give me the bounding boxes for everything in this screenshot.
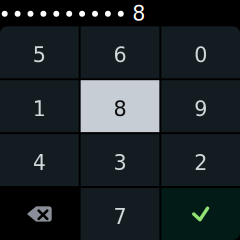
button[interactable]: 7 <box>81 188 159 240</box>
button[interactable]: 2 <box>161 134 240 186</box>
staticText: 3 <box>113 151 126 175</box>
staticText: 8 <box>132 1 145 25</box>
staticText: 0 <box>194 43 207 67</box>
button[interactable]: 0 <box>161 26 240 78</box>
button[interactable]: 5 <box>0 26 79 78</box>
staticText: 4 <box>33 151 46 175</box>
button[interactable]: Delete <box>0 188 79 240</box>
staticText: 2 <box>194 151 207 175</box>
button[interactable]: 3 <box>81 134 159 186</box>
staticText: 7 <box>113 205 126 229</box>
staticText: 5 <box>33 43 46 67</box>
staticText: 1 <box>33 97 46 121</box>
staticText: 9 <box>194 97 207 121</box>
button[interactable]: 8 <box>81 80 159 132</box>
button[interactable]: Confirm <box>161 188 240 240</box>
button[interactable]: 9 <box>161 80 240 132</box>
staticText: 6 <box>113 43 126 67</box>
button[interactable]: 1 <box>0 80 79 132</box>
button[interactable]: 4 <box>0 134 79 186</box>
button[interactable]: 6 <box>81 26 159 78</box>
staticText: 8 <box>113 97 126 121</box>
